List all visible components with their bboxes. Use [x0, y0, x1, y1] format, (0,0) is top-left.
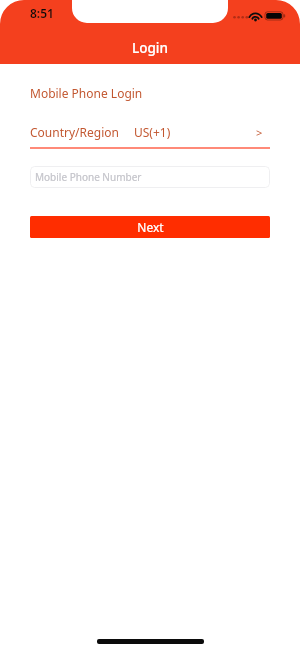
- button[interactable]: Country/Region: [30, 123, 270, 149]
- button[interactable]: Next: [30, 216, 270, 238]
- staticText: US(+1): [134, 124, 171, 140]
- staticText: Country/Region: [30, 124, 119, 140]
- other: Home indicator: [97, 639, 204, 644]
- staticText: Login: [132, 39, 168, 57]
- staticText: 8:51: [30, 5, 54, 21]
- staticText: Next: [137, 219, 164, 235]
- staticText: Mobile Phone Number: [35, 170, 142, 184]
- other: Signal, Wi-Fi and battery status: [232, 6, 292, 22]
- staticText: >: [256, 125, 263, 140]
- staticText: Mobile Phone Login: [30, 85, 143, 101]
- button[interactable]: Mobile Phone Number: [30, 166, 270, 188]
